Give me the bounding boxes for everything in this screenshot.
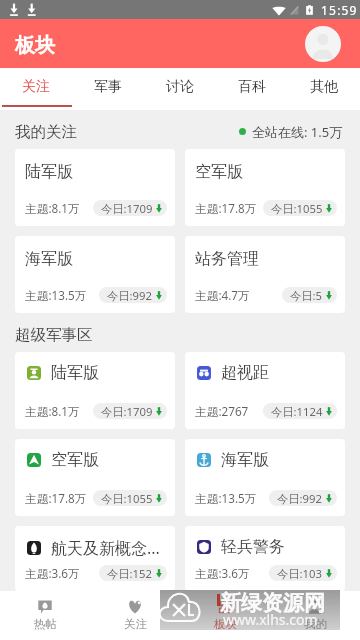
button[interactable]: 热帖 bbox=[0, 591, 90, 640]
staticText: 陆军版 bbox=[51, 363, 99, 383]
staticText: 今日:992 bbox=[107, 288, 153, 303]
button[interactable]: 讨论 bbox=[144, 68, 216, 106]
staticText: 板块 bbox=[15, 33, 55, 58]
staticText: 超级军事区 bbox=[15, 325, 93, 345]
button[interactable]: 板块 bbox=[180, 591, 270, 640]
button[interactable]: 陆军版 bbox=[15, 352, 175, 429]
staticText: 全站在线: 1.5万 bbox=[252, 123, 343, 141]
staticText: 我的关注 bbox=[15, 122, 77, 142]
staticText: 主题:17.8万 bbox=[25, 490, 87, 506]
staticText: 热帖 bbox=[34, 617, 57, 631]
staticText: 我的 bbox=[304, 617, 327, 631]
staticText: 主题:3.6万 bbox=[25, 565, 80, 581]
staticText: 今日:1055 bbox=[271, 201, 323, 216]
button[interactable]: 航天及新概念... bbox=[15, 526, 175, 591]
button[interactable]: 海军版 bbox=[15, 236, 175, 313]
staticText: 主题:3.6万 bbox=[195, 565, 250, 581]
button[interactable]: 陆军版 bbox=[15, 149, 175, 226]
staticText: 百科 bbox=[238, 78, 266, 96]
staticText: 今日:103 bbox=[277, 566, 323, 581]
staticText: 海军版 bbox=[221, 450, 269, 470]
staticText: 主题:8.1万 bbox=[25, 200, 80, 216]
staticText: 陆军版 bbox=[25, 162, 73, 182]
staticText: 主题:8.1万 bbox=[25, 403, 80, 419]
button[interactable]: 关注 bbox=[0, 68, 72, 106]
staticText: 空军版 bbox=[51, 450, 99, 470]
button[interactable]: 站务管理 bbox=[185, 236, 345, 313]
button[interactable]: 军事 bbox=[72, 68, 144, 106]
staticText: 航天及新概念... bbox=[51, 537, 160, 559]
staticText: 轻兵警务 bbox=[221, 537, 285, 557]
button[interactable]: 关注 bbox=[90, 591, 180, 640]
staticText: 今日:152 bbox=[107, 566, 153, 581]
staticText: 今日:1124 bbox=[271, 404, 323, 419]
button[interactable]: 轻兵警务 bbox=[185, 526, 345, 591]
staticText: 今日:5 bbox=[290, 288, 323, 303]
staticText: www.xlhs.com bbox=[223, 610, 318, 629]
button[interactable]: 超视距 bbox=[185, 352, 345, 429]
staticText: 主题:13.5万 bbox=[25, 287, 87, 303]
staticText: 今日:1055 bbox=[101, 491, 153, 506]
staticText: 讨论 bbox=[166, 78, 194, 96]
button[interactable]: 百科 bbox=[216, 68, 288, 106]
button[interactable]: 其他 bbox=[288, 68, 360, 106]
button[interactable]: Profile bbox=[305, 26, 341, 62]
staticText: 关注 bbox=[22, 78, 50, 96]
staticText: 板块 bbox=[214, 617, 237, 631]
staticText: 其他 bbox=[310, 78, 338, 96]
staticText: 主题:13.5万 bbox=[195, 490, 257, 506]
staticText: 新绿资源网 bbox=[220, 590, 325, 616]
staticText: 今日:992 bbox=[277, 491, 323, 506]
staticText: 今日:1709 bbox=[101, 201, 153, 216]
button[interactable]: 空军版 bbox=[185, 149, 345, 226]
staticText: 空军版 bbox=[195, 162, 243, 182]
staticText: 海军版 bbox=[25, 249, 73, 269]
staticText: 关注 bbox=[124, 617, 147, 631]
staticText: 今日:1709 bbox=[101, 404, 153, 419]
staticText: 主题:17.8万 bbox=[195, 200, 257, 216]
button[interactable]: 空军版 bbox=[15, 439, 175, 516]
button[interactable]: 海军版 bbox=[185, 439, 345, 516]
staticText: 主题:4.7万 bbox=[195, 287, 250, 303]
staticText: 15:59 bbox=[321, 2, 358, 18]
staticText: 站务管理 bbox=[195, 249, 259, 269]
staticText: 超视距 bbox=[221, 363, 269, 383]
staticText: 主题:2767 bbox=[195, 403, 249, 419]
staticText: 军事 bbox=[94, 78, 122, 96]
button[interactable]: 我的 bbox=[270, 591, 360, 640]
